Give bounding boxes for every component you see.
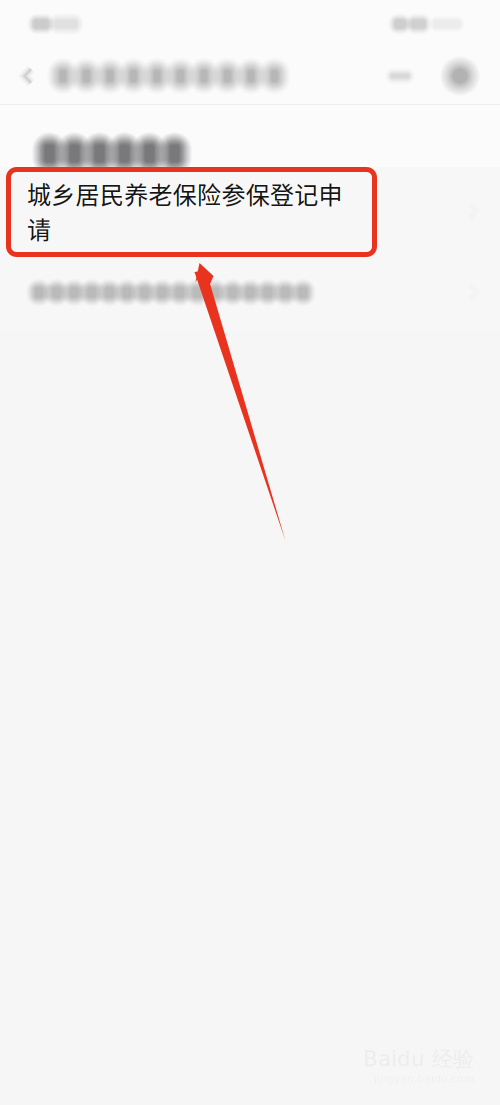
button[interactable]: Close [434, 48, 486, 104]
button[interactable]: 城乡居民养老保险参保登记申请 [0, 167, 500, 255]
button[interactable]: Minimise [366, 48, 434, 104]
button[interactable] [0, 255, 500, 330]
staticText: 城乡居民养老保险参保登记申请 [27, 176, 343, 246]
button[interactable]: Back [9, 48, 47, 104]
staticText: Baidu 经验 [363, 1046, 474, 1073]
